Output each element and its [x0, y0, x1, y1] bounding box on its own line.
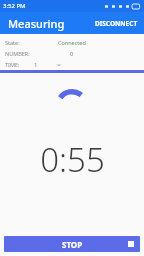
button[interactable]: 1	[30, 60, 42, 70]
staticText: 3:52 PM	[3, 2, 26, 10]
button[interactable]: DISCONNECT	[89, 15, 144, 32]
other: Expand	[56, 62, 62, 68]
staticText: STOP	[62, 239, 83, 250]
staticText: TIME:	[5, 61, 20, 68]
staticText: Measuring	[8, 16, 65, 31]
staticText: 0:55	[40, 137, 105, 182]
staticText: NUMBER:	[5, 50, 30, 57]
staticText: 1	[34, 61, 38, 69]
staticText: State:	[5, 39, 20, 46]
button[interactable]: STOP	[4, 236, 140, 252]
staticText: 0	[70, 50, 74, 57]
staticText: DISCONNECT	[95, 19, 138, 28]
staticText: Connected	[58, 39, 86, 46]
